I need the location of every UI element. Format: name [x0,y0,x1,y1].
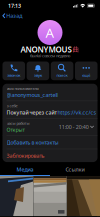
staticText: Открыт [6,126,24,133]
button[interactable]: Search [51,61,73,80]
button[interactable]: имя пользователя [2,84,97,101]
button[interactable]: часы работы [2,118,97,136]
staticText: Заблокировать [6,152,44,159]
button[interactable]: Mute [27,61,49,80]
button[interactable]: Заблокировать [2,149,97,162]
button[interactable]: о себе [2,101,97,118]
staticText: Добавить в контакты [6,139,58,146]
button[interactable]: Добавить в контакты [2,136,97,149]
staticText: 17:13 [8,2,21,9]
staticText: ещё [82,72,90,78]
staticText: https://vk.cc/cs [57,109,96,116]
staticText: имя пользователя [6,86,38,91]
button[interactable]: More [75,61,98,80]
staticText: A [45,24,54,41]
staticText: Медиа [16,166,33,173]
staticText: был(а) совсем недавно [30,53,70,58]
staticText: о себе [6,103,17,108]
staticText: звук [34,72,42,78]
staticText: Ссылки [65,166,84,173]
staticText: поиск [57,72,68,78]
staticText: @anonymous_cartell [6,91,57,98]
staticText: ANONYMOUS [20,44,71,55]
staticText: звонок [7,72,20,78]
staticText: Покупай через сайт [6,109,56,116]
staticText: 曲 [73,45,80,54]
staticText: 11:00 - 20:40 [59,123,89,130]
staticText: Назад [6,12,22,19]
button[interactable]: Медиа [0,164,50,176]
button[interactable]: Назад [0,11,22,21]
button[interactable]: Ссылки [50,164,100,176]
staticText: часы работы [6,120,29,126]
button[interactable]: Call [2,61,25,80]
